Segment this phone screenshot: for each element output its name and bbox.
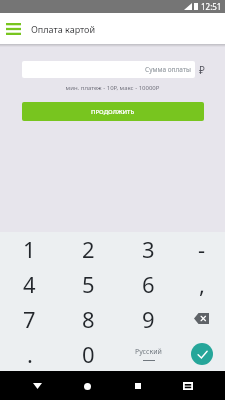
button[interactable]: Сумма оплаты	[22, 61, 195, 78]
staticText: 9	[142, 304, 155, 334]
button[interactable]: Enter	[178, 336, 225, 371]
staticText: 1	[23, 234, 36, 264]
button[interactable]: ,	[178, 266, 225, 301]
staticText: 4	[23, 269, 36, 299]
button[interactable]: .	[0, 336, 59, 371]
button[interactable]: 9	[118, 301, 178, 336]
staticText: 12:51	[201, 1, 222, 12]
staticText: ₽	[199, 63, 205, 77]
staticText: 5	[82, 269, 95, 299]
button[interactable]: -	[178, 232, 225, 266]
button[interactable]: ПРОДОЛЖИТЬ	[22, 102, 204, 121]
button[interactable]: 4	[0, 266, 59, 301]
button[interactable]: Menu	[2, 18, 24, 40]
staticText: 8	[82, 304, 95, 334]
button[interactable]: 1	[0, 232, 59, 266]
button[interactable]: Backspace	[178, 301, 225, 336]
staticText: ПРОДОЛЖИТЬ	[91, 108, 135, 116]
staticText: 6	[142, 269, 155, 299]
button[interactable]: 7	[0, 301, 59, 336]
button[interactable]: Home	[74, 373, 100, 399]
staticText: 3	[142, 234, 155, 264]
staticText: 0	[82, 339, 95, 369]
staticText: Оплата картой	[31, 23, 96, 35]
staticText: Русский	[135, 347, 162, 357]
button[interactable]: 8	[59, 301, 118, 336]
staticText: .	[27, 339, 33, 369]
button[interactable]: 0	[59, 336, 118, 371]
staticText: 2	[82, 234, 95, 264]
other: Backspace	[178, 301, 225, 336]
button[interactable]: Switch keyboard	[175, 373, 201, 399]
staticText: 7	[23, 304, 36, 334]
staticText: ,	[199, 269, 205, 299]
button[interactable]: Recent apps	[125, 373, 151, 399]
staticText: Сумма оплаты	[145, 65, 191, 74]
button[interactable]: 5	[59, 266, 118, 301]
staticText: мин. платеж - 10Р, макс - 10000Р	[0, 84, 225, 92]
button[interactable]: Русский	[118, 336, 178, 371]
other: Enter	[178, 336, 225, 371]
button[interactable]: 2	[59, 232, 118, 266]
button[interactable]: 6	[118, 266, 178, 301]
button[interactable]: 3	[118, 232, 178, 266]
button[interactable]: Back	[24, 373, 50, 399]
staticText: -	[198, 234, 206, 264]
